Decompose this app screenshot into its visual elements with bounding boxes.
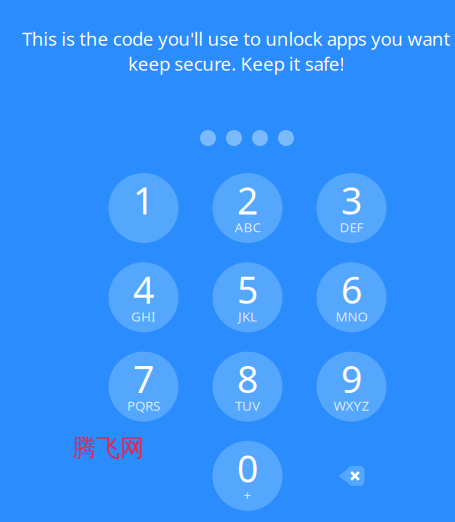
staticText: DEF bbox=[339, 218, 363, 236]
button[interactable]: 6 bbox=[316, 262, 386, 332]
staticText: 腾飞网 bbox=[72, 433, 144, 463]
button[interactable]: 4 bbox=[108, 262, 178, 332]
staticText: 3 bbox=[341, 175, 362, 225]
button[interactable]: 9 bbox=[316, 352, 386, 422]
staticText: JKL bbox=[238, 307, 257, 325]
button[interactable]: 7 bbox=[108, 352, 178, 422]
staticText: 1 bbox=[133, 175, 154, 225]
button[interactable]: 3 bbox=[316, 173, 386, 243]
button[interactable]: 2 bbox=[212, 173, 282, 243]
staticText: WXYZ bbox=[333, 397, 369, 414]
staticText: 8 bbox=[237, 354, 258, 403]
button[interactable]: 5 bbox=[212, 262, 282, 332]
staticText: This is the code you'll use to unlock ap… bbox=[22, 26, 450, 76]
staticText: PQRS bbox=[127, 397, 160, 414]
staticText: 0 bbox=[237, 443, 258, 493]
staticText: 9 bbox=[341, 354, 362, 403]
staticText: MNO bbox=[335, 307, 367, 325]
staticText: 7 bbox=[133, 354, 154, 403]
staticText: 2 bbox=[237, 175, 258, 225]
staticText: + bbox=[243, 486, 251, 504]
staticText: 4 bbox=[133, 264, 154, 314]
button[interactable]: Delete bbox=[316, 441, 386, 511]
staticText: TUV bbox=[235, 397, 260, 414]
staticText: 6 bbox=[341, 264, 362, 314]
button[interactable]: 8 bbox=[212, 352, 282, 422]
button[interactable]: 0 bbox=[212, 441, 282, 511]
staticText: 5 bbox=[237, 264, 258, 314]
button[interactable]: 1 bbox=[108, 173, 178, 243]
staticText: GHI bbox=[131, 307, 156, 325]
staticText: ABC bbox=[234, 218, 260, 236]
